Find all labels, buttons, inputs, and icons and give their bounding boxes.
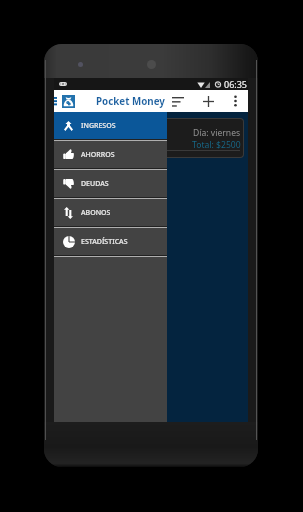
button[interactable]: Open navigation drawer	[54, 97, 57, 106]
staticText: DEUDAS	[81, 179, 109, 189]
button[interactable]: Sort	[167, 90, 188, 112]
staticText: INGRESOS	[81, 121, 116, 131]
staticText: 06:35	[224, 78, 248, 90]
staticText: Pocket Money	[96, 95, 165, 108]
button[interactable]: DEUDAS	[54, 170, 167, 197]
staticText: ABONOS	[81, 208, 111, 218]
staticText: Día: viernes	[193, 127, 241, 139]
staticText: Total: $2500	[192, 139, 241, 151]
staticText: ESTADÍSTICAS	[81, 237, 128, 247]
button[interactable]: AHORROS	[54, 141, 167, 168]
button[interactable]: INGRESOS	[54, 112, 167, 139]
staticText: AHORROS	[81, 150, 115, 160]
button[interactable]: More options	[226, 90, 245, 112]
button[interactable]: ESTADÍSTICAS	[54, 228, 167, 255]
button[interactable]: Add	[198, 90, 219, 112]
button[interactable]: ABONOS	[54, 199, 167, 226]
button[interactable]: Día: viernes	[58, 119, 243, 157]
